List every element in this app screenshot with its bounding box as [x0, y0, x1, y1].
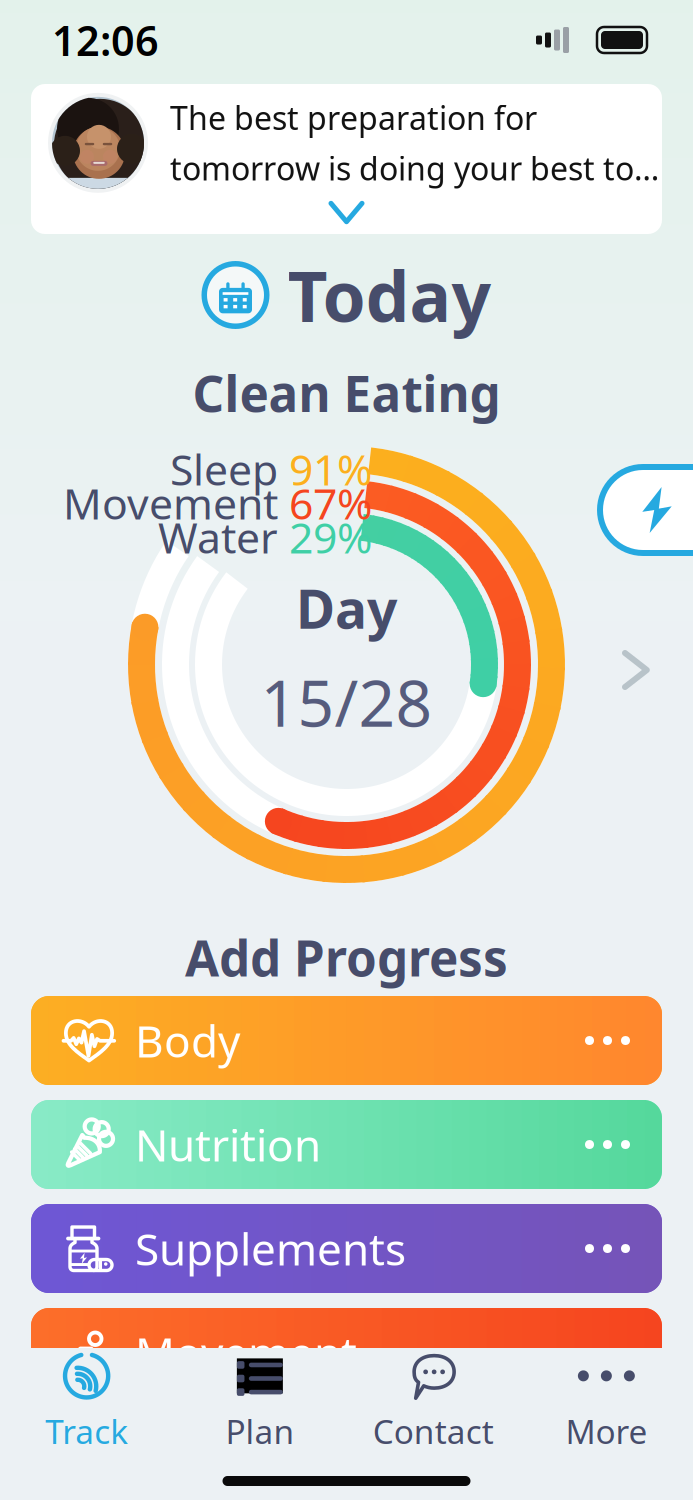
- staticText: 91%: [278, 441, 372, 497]
- staticText: 12:06: [52, 13, 159, 67]
- staticText: Movement: [63, 475, 278, 531]
- button[interactable]: Plan: [173, 1350, 346, 1454]
- staticText: Body: [135, 1011, 240, 1070]
- staticText: Contact: [373, 1409, 494, 1453]
- button[interactable]: The best preparation for: [31, 84, 662, 234]
- button[interactable]: Track: [0, 1350, 173, 1454]
- staticText: Supplements: [135, 1219, 406, 1278]
- button[interactable]: Movement: [31, 1308, 662, 1397]
- staticText: 67%: [278, 475, 372, 531]
- staticText: Clean Eating: [192, 360, 500, 425]
- staticText: Add Progress: [185, 924, 508, 990]
- button[interactable]: Quick add: [597, 464, 693, 556]
- staticText: Sleep: [170, 441, 278, 497]
- staticText: 29%: [278, 509, 372, 565]
- button[interactable]: Contact: [346, 1350, 520, 1454]
- staticText: More: [565, 1409, 647, 1453]
- staticText: Nutrition: [135, 1115, 321, 1174]
- staticText: The best preparation for: [170, 96, 537, 139]
- staticText: 15/28: [260, 659, 432, 744]
- button[interactable]: More: [520, 1350, 693, 1454]
- button[interactable]: Supplements: [31, 1204, 662, 1293]
- button[interactable]: Nutrition: [31, 1100, 662, 1189]
- staticText: Today: [287, 249, 491, 341]
- button[interactable]: Body: [31, 996, 662, 1085]
- staticText: Water: [158, 509, 278, 565]
- staticText: Plan: [225, 1409, 294, 1453]
- staticText: Track: [45, 1409, 128, 1453]
- staticText: Day: [296, 573, 397, 643]
- staticText: Movement: [135, 1323, 357, 1382]
- staticText: tomorrow is doing your best to…: [170, 147, 659, 189]
